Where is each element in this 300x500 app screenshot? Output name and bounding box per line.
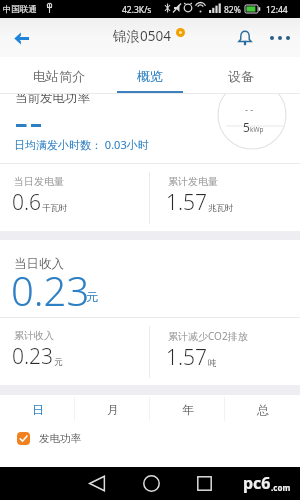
staticText: 概览: [137, 68, 163, 84]
staticText: 兆瓦时: [208, 203, 234, 214]
staticText: 5: [243, 119, 250, 135]
button[interactable]: 月: [75, 395, 150, 423]
button[interactable]: 电站简介: [14, 57, 104, 94]
button[interactable]: 累计收入: [0, 318, 149, 385]
button[interactable]: 累计减少CO2排放: [150, 318, 300, 385]
staticText: 累计收入: [14, 329, 54, 342]
staticText: 当前发电功率: [15, 94, 90, 106]
staticText: 1.57: [166, 343, 208, 372]
button[interactable]: 概览: [104, 57, 195, 94]
button[interactable]: 年: [150, 395, 225, 423]
staticText: 当日发电量: [14, 175, 64, 188]
staticText: 42.3K/s: [122, 4, 152, 16]
staticText: 月: [107, 402, 119, 417]
button[interactable]: 当日发电量: [0, 164, 149, 231]
button[interactable]: 日: [0, 395, 75, 423]
button[interactable]: Recents: [183, 467, 225, 500]
button[interactable]: 设备: [195, 57, 286, 94]
staticText: 日均满发小时数： 0.03小时: [14, 137, 149, 152]
staticText: pc6: [243, 472, 271, 494]
staticText: 年: [182, 402, 194, 417]
staticText: 日: [32, 402, 44, 417]
staticText: 设备: [228, 68, 254, 84]
staticText: 中国联通: [3, 4, 37, 15]
staticText: .com: [271, 482, 291, 493]
button[interactable]: 累计发电量: [150, 164, 300, 231]
button[interactable]: Home: [130, 467, 172, 500]
staticText: 总: [257, 402, 269, 417]
staticText: 82%: [224, 4, 241, 16]
staticText: 当日收入: [14, 256, 64, 272]
staticText: 0.23: [12, 342, 54, 371]
staticText: 12:44: [266, 4, 288, 16]
staticText: 电站简介: [33, 68, 85, 84]
staticText: 元: [86, 289, 98, 304]
staticText: 累计发电量: [168, 175, 218, 188]
staticText: 吨: [208, 358, 217, 369]
button[interactable]: More options: [266, 24, 294, 52]
staticText: - -: [245, 103, 254, 115]
staticText: 1.57: [166, 188, 208, 217]
button[interactable]: Back: [76, 467, 118, 500]
staticText: 0.23: [11, 263, 90, 317]
button[interactable]: Notifications: [231, 24, 259, 52]
button[interactable]: Back: [6, 23, 36, 53]
staticText: 元: [54, 357, 63, 368]
staticText: kWp: [250, 125, 264, 134]
button[interactable]: 当日收入: [0, 240, 300, 317]
staticText: 千瓦时: [42, 203, 68, 214]
button[interactable]: 总: [225, 395, 300, 423]
staticText: 累计减少CO2排放: [168, 329, 248, 343]
staticText: 0.6: [12, 188, 42, 217]
staticText: 锦浪0504: [113, 27, 171, 45]
staticText: 发电功率: [39, 432, 81, 445]
